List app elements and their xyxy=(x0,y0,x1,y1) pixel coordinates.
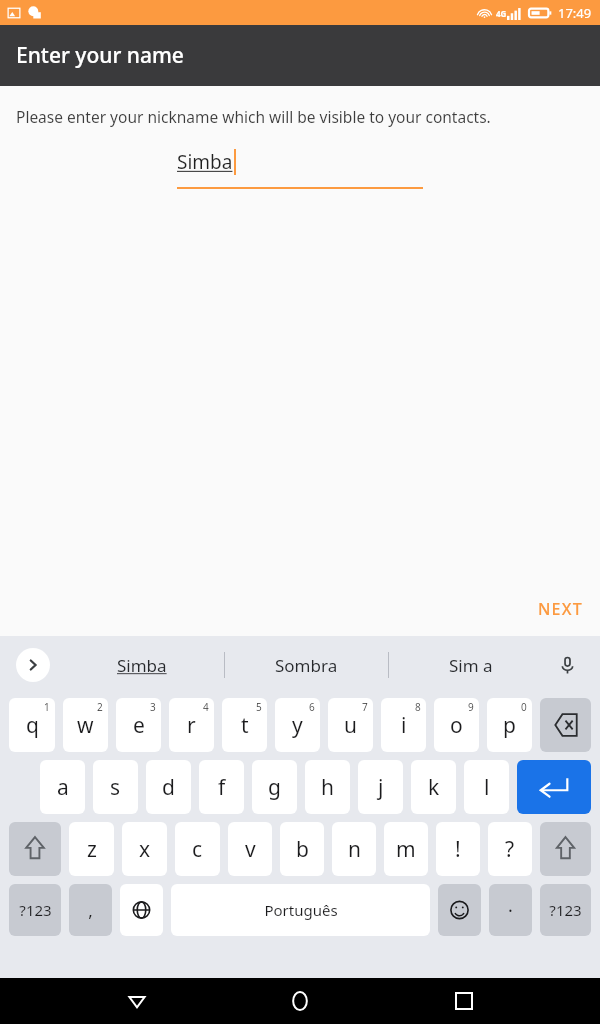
button[interactable]: Emoji xyxy=(438,884,481,936)
button[interactable]: u xyxy=(328,698,373,752)
staticText: 2 xyxy=(97,700,103,714)
button[interactable]: w xyxy=(63,698,108,752)
staticText: x xyxy=(139,835,151,864)
button[interactable]: Simba xyxy=(177,149,423,189)
staticText: q xyxy=(26,711,39,740)
button[interactable]: ?123 xyxy=(9,884,61,936)
button[interactable]: Back xyxy=(110,978,164,1024)
button[interactable]: Sombra xyxy=(225,636,388,694)
button[interactable]: n xyxy=(332,822,376,876)
staticText: z xyxy=(87,835,97,864)
staticText: e xyxy=(133,711,145,740)
button[interactable]: e xyxy=(116,698,161,752)
staticText: Simba xyxy=(177,149,233,175)
button[interactable]: v xyxy=(228,822,272,876)
staticText: t xyxy=(241,711,249,740)
staticText: ? xyxy=(505,835,515,864)
staticText: Português xyxy=(264,900,338,920)
staticText: 5 xyxy=(256,700,262,714)
staticText: g xyxy=(268,773,281,802)
staticText: Sombra xyxy=(275,654,338,677)
button[interactable]: a xyxy=(40,760,85,814)
staticText: 7 xyxy=(362,700,368,714)
staticText: a xyxy=(57,773,69,802)
button[interactable]: Simba xyxy=(60,636,224,694)
staticText: m xyxy=(396,835,416,864)
staticText: r xyxy=(187,711,196,740)
button[interactable]: o xyxy=(434,698,479,752)
staticText: ?123 xyxy=(19,900,52,920)
button[interactable]: q xyxy=(9,698,55,752)
button[interactable]: · xyxy=(489,884,532,936)
button[interactable]: Shift xyxy=(540,822,591,876)
button[interactable]: z xyxy=(69,822,114,876)
button[interactable]: r xyxy=(169,698,214,752)
button[interactable]: p xyxy=(487,698,532,752)
staticText: n xyxy=(348,835,361,864)
button[interactable]: h xyxy=(305,760,350,814)
button[interactable]: Expand suggestions xyxy=(16,648,50,682)
button[interactable]: Voice input xyxy=(552,650,582,680)
button[interactable]: Home xyxy=(273,978,327,1024)
staticText: NEXT xyxy=(538,598,583,620)
button[interactable]: y xyxy=(275,698,320,752)
button[interactable]: b xyxy=(280,822,324,876)
staticText: ! xyxy=(455,835,461,864)
staticText: o xyxy=(450,711,463,740)
button[interactable]: Enter xyxy=(517,760,591,814)
staticText: 0 xyxy=(521,700,527,714)
staticText: i xyxy=(401,711,407,740)
button[interactable]: t xyxy=(222,698,267,752)
button[interactable]: k xyxy=(411,760,456,814)
staticText: 1 xyxy=(44,700,50,714)
button[interactable]: Change language xyxy=(120,884,163,936)
staticText: 8 xyxy=(415,700,421,714)
staticText: Simba xyxy=(117,654,167,677)
staticText: Sim a xyxy=(449,654,493,677)
staticText: c xyxy=(192,835,203,864)
staticText: 4G xyxy=(496,8,507,19)
staticText: 9 xyxy=(468,700,474,714)
staticText: p xyxy=(503,711,516,740)
staticText: 3 xyxy=(150,700,156,714)
staticText: v xyxy=(245,835,256,864)
staticText: Please enter your nickname which will be… xyxy=(16,106,491,127)
staticText: f xyxy=(218,773,226,802)
button[interactable]: d xyxy=(146,760,191,814)
button[interactable]: Português xyxy=(171,884,430,936)
button[interactable]: Backspace xyxy=(540,698,591,752)
button[interactable]: ?123 xyxy=(540,884,591,936)
button[interactable]: m xyxy=(384,822,428,876)
staticText: Enter your name xyxy=(16,41,184,70)
staticText: , xyxy=(88,899,93,922)
staticText: j xyxy=(378,773,384,802)
staticText: l xyxy=(484,773,490,802)
button[interactable]: j xyxy=(358,760,403,814)
staticText: w xyxy=(77,711,94,740)
staticText: d xyxy=(162,773,175,802)
staticText: y xyxy=(292,711,303,740)
button[interactable]: Shift xyxy=(9,822,61,876)
button[interactable]: i xyxy=(381,698,426,752)
staticText: b xyxy=(296,835,309,864)
button[interactable]: s xyxy=(93,760,138,814)
staticText: 4 xyxy=(203,700,209,714)
button[interactable]: Sim a xyxy=(389,636,552,694)
button[interactable]: , xyxy=(69,884,112,936)
button[interactable]: ! xyxy=(436,822,480,876)
button[interactable]: l xyxy=(464,760,509,814)
button[interactable]: NEXT xyxy=(521,588,600,630)
button[interactable]: c xyxy=(175,822,220,876)
staticText: ?123 xyxy=(549,900,582,920)
staticText: h xyxy=(321,773,334,802)
button[interactable]: f xyxy=(199,760,244,814)
button[interactable]: x xyxy=(122,822,167,876)
staticText: u xyxy=(344,711,357,740)
button[interactable]: Recents xyxy=(437,978,491,1024)
button[interactable]: g xyxy=(252,760,297,814)
staticText: 17:49 xyxy=(558,4,592,22)
button[interactable]: ? xyxy=(488,822,532,876)
staticText: k xyxy=(428,773,440,802)
staticText: 6 xyxy=(309,700,315,714)
staticText: s xyxy=(110,773,121,802)
